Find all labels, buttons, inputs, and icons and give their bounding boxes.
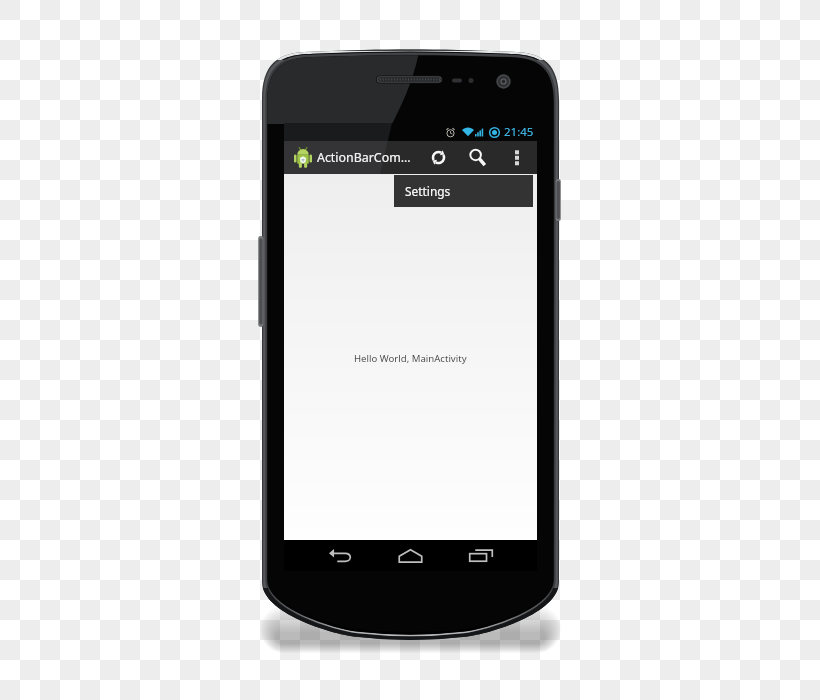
staticText: Hello World, MainActivity [354, 352, 467, 365]
button[interactable]: Refresh [419, 141, 458, 174]
button[interactable]: Recent apps [458, 540, 504, 571]
button[interactable]: Back [317, 540, 363, 571]
button[interactable]: More options [497, 141, 537, 174]
staticText: ActionBarCom… [317, 149, 411, 166]
staticText: 21:45 [504, 124, 534, 140]
staticText: Settings [405, 183, 451, 199]
button[interactable]: Home [387, 540, 434, 571]
button[interactable]: Search [458, 141, 497, 174]
button[interactable]: Settings [394, 175, 533, 207]
